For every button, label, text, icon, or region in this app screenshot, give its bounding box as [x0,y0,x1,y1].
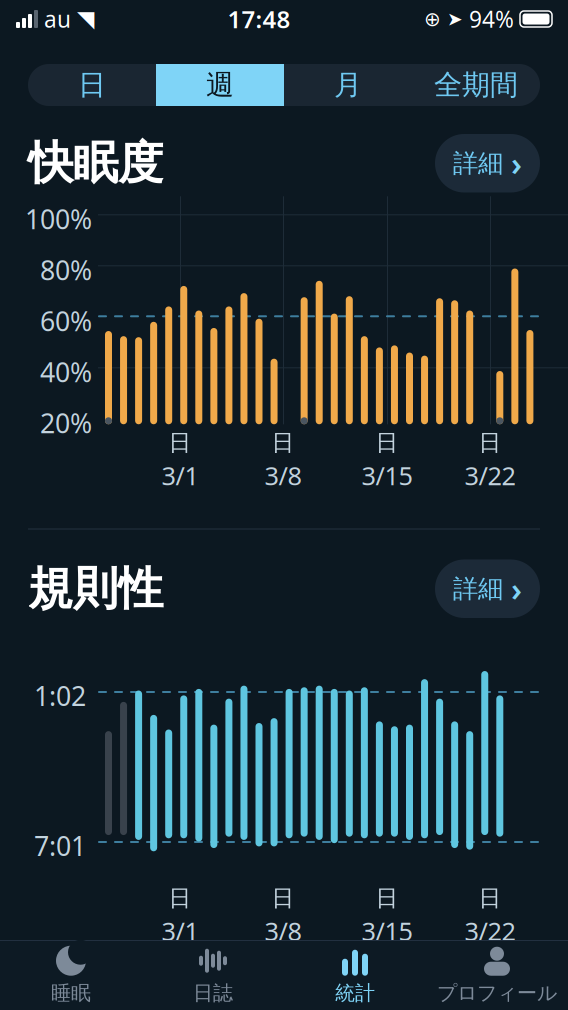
button[interactable]: 詳細 [435,134,540,192]
staticText: 3/15 [361,914,412,948]
staticText: 3/22 [464,459,515,492]
button[interactable]: 日 [28,64,156,106]
button[interactable]: プロフィール [426,941,568,1010]
button[interactable]: 全期間 [412,64,540,106]
staticText: ➤ [447,8,463,30]
staticText: 3/1 [161,914,198,948]
staticText: 日 [478,884,501,912]
staticText: 睡眠 [51,981,91,1005]
staticText: › [511,142,522,184]
staticText: 統計 [335,981,375,1005]
staticText: 3/8 [264,914,301,948]
staticText: 規則性 [28,561,163,617]
staticText: 詳細 [453,573,503,604]
staticText: 月 [334,68,362,102]
staticText: ⊕ [424,8,441,30]
staticText: 快眠度 [28,135,163,191]
button[interactable]: 統計 [284,941,426,1010]
staticText: 80% [40,252,92,288]
staticText: › [511,567,522,610]
button[interactable]: 詳細 [435,559,540,618]
staticText: 3/8 [264,459,301,492]
staticText: 3/1 [161,459,198,492]
staticText: 日 [168,429,191,457]
staticText: 日 [375,884,398,912]
staticText: プロフィール [437,981,557,1005]
staticText: 日 [271,429,294,457]
staticText: 日 [271,884,294,912]
staticText: 週 [206,68,234,102]
staticText: 40% [40,354,92,390]
staticText: 日 [168,884,191,912]
staticText: 詳細 [453,148,503,179]
button[interactable]: 日誌 [142,941,284,1010]
staticText: 日 [478,429,501,457]
staticText: 日 [375,429,398,457]
staticText: ◥ [77,6,94,32]
staticText: 20% [40,405,92,441]
staticText: 全期間 [434,68,518,102]
staticText: 17:48 [227,3,290,35]
staticText: 94% [469,4,514,34]
staticText: 60% [40,303,92,339]
button[interactable]: 月 [284,64,412,106]
staticText: au [44,4,71,34]
staticText: 7:01 [34,828,86,863]
staticText: 日誌 [193,981,233,1005]
button[interactable]: 睡眠 [0,941,142,1010]
staticText: 100% [25,201,92,237]
button[interactable]: 週 [156,64,284,106]
staticText: 1:02 [34,678,86,713]
staticText: 3/15 [361,459,412,492]
staticText: 日 [78,68,106,102]
staticText: 3/22 [464,914,515,948]
